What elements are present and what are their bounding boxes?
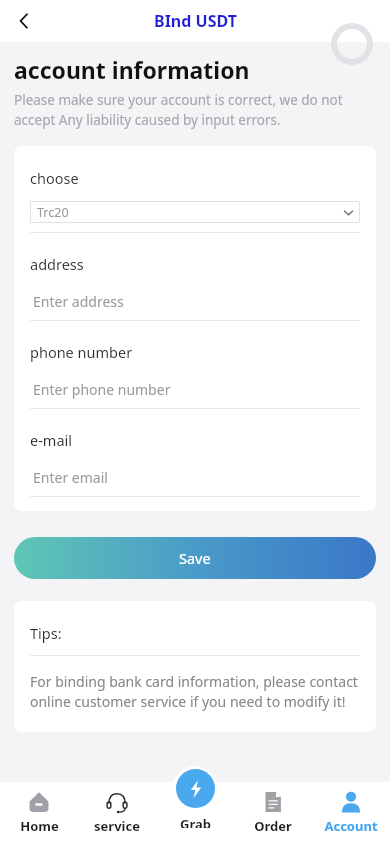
button[interactable]: Enter phone number (30, 378, 360, 400)
button[interactable]: Account (312, 791, 390, 835)
staticText: e-mail (30, 430, 73, 450)
staticText: Please make sure your account is correct… (14, 91, 372, 129)
staticText: Save (179, 548, 211, 568)
staticText: Enter address (33, 292, 124, 311)
staticText: Trc20 (37, 204, 69, 221)
staticText: Enter email (33, 468, 108, 487)
staticText: Order (254, 817, 292, 835)
button[interactable]: Enter address (30, 290, 360, 312)
button[interactable]: Home (0, 791, 78, 835)
staticText: Account (324, 817, 378, 835)
button[interactable]: Trc20 (30, 201, 360, 223)
staticText: Enter phone number (33, 380, 171, 399)
button[interactable]: Order (234, 791, 312, 835)
button[interactable]: Enter email (30, 466, 360, 488)
button[interactable]: Grab (173, 766, 217, 828)
button[interactable]: Back (4, 1, 44, 41)
staticText: Home (20, 817, 59, 835)
staticText: For binding bank card information, pleas… (30, 672, 360, 712)
staticText: BInd USDT (154, 10, 237, 32)
button[interactable]: Save (14, 537, 376, 579)
staticText: service (94, 817, 140, 835)
staticText: Tips: (30, 623, 62, 643)
staticText: account information (14, 54, 250, 85)
other: Grab (176, 769, 215, 808)
staticText: phone number (30, 342, 133, 362)
staticText: Grab (180, 815, 211, 828)
button[interactable]: service (78, 791, 156, 835)
staticText: address (30, 254, 84, 274)
staticText: choose (30, 168, 79, 188)
